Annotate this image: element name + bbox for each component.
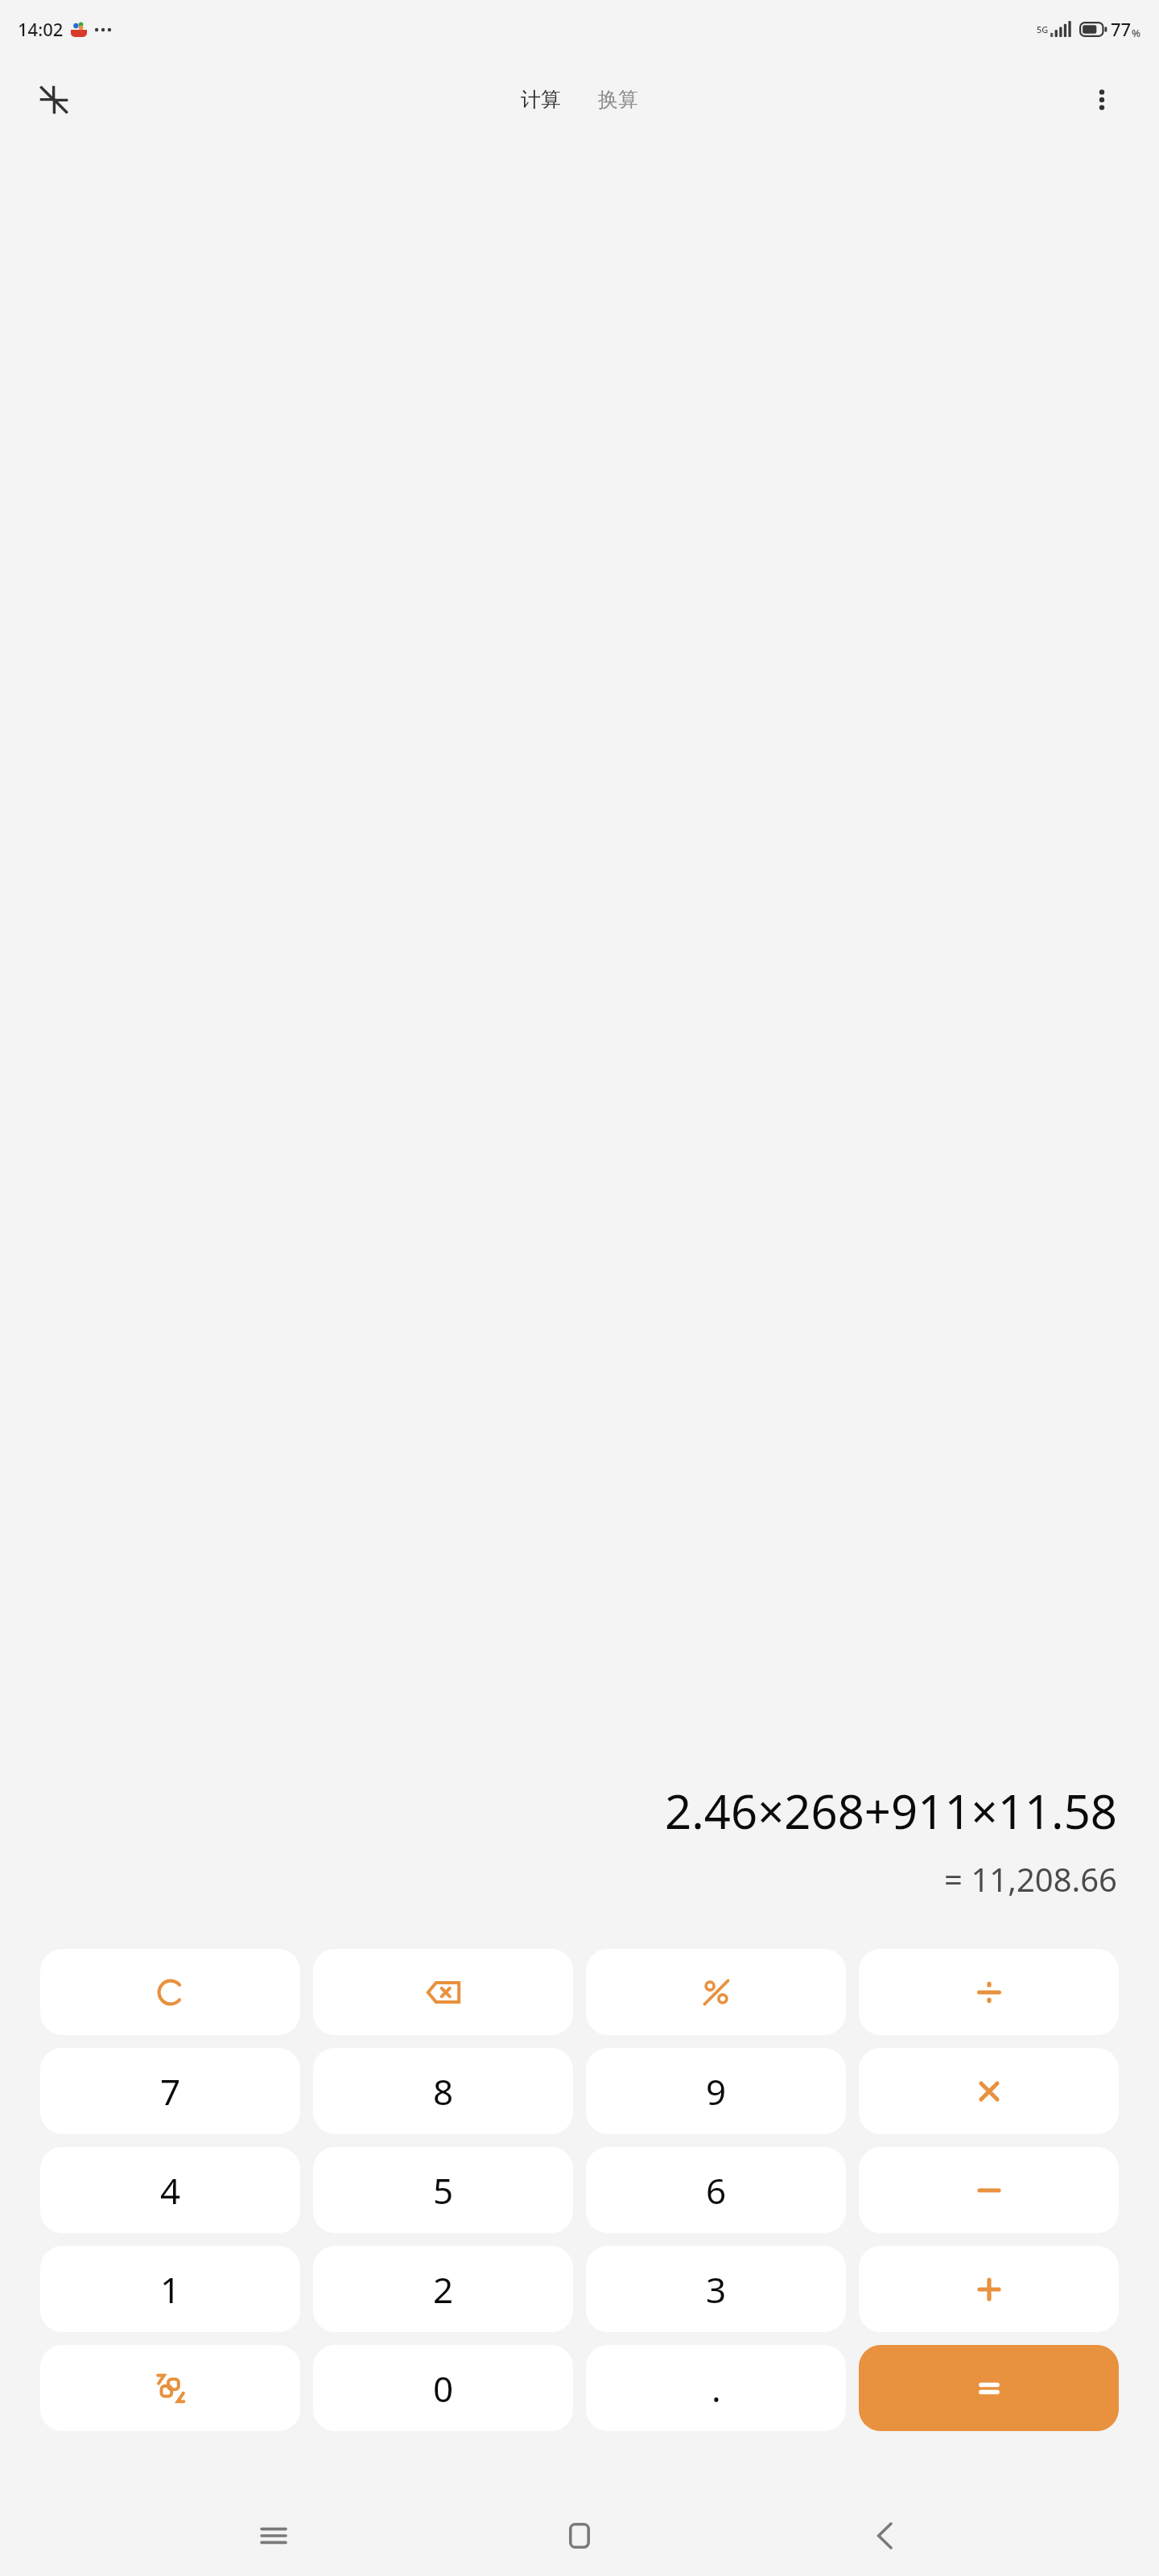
- staticText: 1: [160, 2265, 181, 2314]
- staticText: 2: [433, 2265, 454, 2314]
- button[interactable]: plus: [859, 2246, 1119, 2332]
- button[interactable]: percent: [586, 1949, 846, 2035]
- button[interactable]: clear: [40, 1949, 300, 2035]
- button[interactable]: 6: [586, 2147, 846, 2233]
- button[interactable]: 4: [40, 2147, 300, 2233]
- button[interactable]: multiply: [859, 2048, 1119, 2134]
- staticText: 9: [706, 2067, 727, 2116]
- button[interactable]: 1: [40, 2246, 300, 2332]
- staticText: 5: [433, 2166, 454, 2215]
- staticText: 14:02: [18, 17, 64, 41]
- button[interactable]: 计算: [511, 82, 571, 117]
- button[interactable]: 0: [313, 2345, 573, 2431]
- staticText: %: [1132, 26, 1141, 40]
- staticText: = 11,208.66: [42, 1857, 1117, 1901]
- button[interactable]: Collapse: [29, 75, 79, 125]
- button[interactable]: 换算: [588, 82, 648, 117]
- button[interactable]: convert: [40, 2345, 300, 2431]
- button[interactable]: Recents: [241, 2504, 306, 2568]
- button[interactable]: .: [586, 2345, 846, 2431]
- staticText: .: [711, 2364, 721, 2413]
- button[interactable]: 8: [313, 2048, 573, 2134]
- staticText: 换算: [598, 87, 638, 112]
- button[interactable]: 7: [40, 2048, 300, 2134]
- button[interactable]: Back: [853, 2504, 918, 2568]
- button[interactable]: minus: [859, 2147, 1119, 2233]
- staticText: 2.46×268+911×11.58: [42, 1779, 1117, 1843]
- button[interactable]: Home: [547, 2504, 612, 2568]
- staticText: 6: [706, 2166, 727, 2215]
- button[interactable]: backspace: [313, 1949, 573, 2035]
- staticText: 8: [433, 2067, 454, 2116]
- staticText: 5G: [1037, 23, 1049, 35]
- button[interactable]: 2: [313, 2246, 573, 2332]
- staticText: 7: [160, 2067, 181, 2116]
- button[interactable]: 9: [586, 2048, 846, 2134]
- button[interactable]: 5: [313, 2147, 573, 2233]
- staticText: 77: [1111, 17, 1132, 41]
- staticText: 计算: [521, 87, 561, 112]
- button[interactable]: 3: [586, 2246, 846, 2332]
- staticText: 3: [706, 2265, 727, 2314]
- staticText: 0: [433, 2364, 454, 2413]
- staticText: 4: [160, 2166, 181, 2215]
- button[interactable]: divide: [859, 1949, 1119, 2035]
- button[interactable]: More options: [1077, 75, 1127, 125]
- button[interactable]: equals: [859, 2345, 1119, 2431]
